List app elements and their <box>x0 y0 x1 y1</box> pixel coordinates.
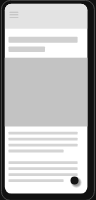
button[interactable]: Add <box>71 177 79 185</box>
button[interactable]: Menu <box>9 10 20 19</box>
